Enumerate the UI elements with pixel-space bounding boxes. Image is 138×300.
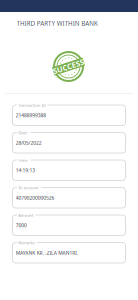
staticText: MAYANK KR. ,ZILA MANTRI. bbox=[16, 249, 138, 278]
staticText: 40790200000526 bbox=[16, 194, 138, 223]
staticText: Date bbox=[18, 130, 66, 158]
staticText: To account bbox=[18, 185, 126, 213]
staticText: Remarks bbox=[18, 240, 105, 268]
staticText: 7000 bbox=[16, 222, 64, 250]
staticText: 28/05/2022 bbox=[16, 139, 128, 168]
staticText: Amount bbox=[18, 212, 99, 241]
staticText: Time bbox=[18, 157, 68, 186]
staticText: 14:19:13 bbox=[16, 167, 100, 195]
staticText: THIRD PARTY WITHIN BANK bbox=[16, 19, 138, 48]
staticText: 21488999388 bbox=[16, 112, 138, 140]
staticText: SUCCESS bbox=[23, 52, 114, 81]
staticText: Transaction ID bbox=[18, 102, 138, 131]
